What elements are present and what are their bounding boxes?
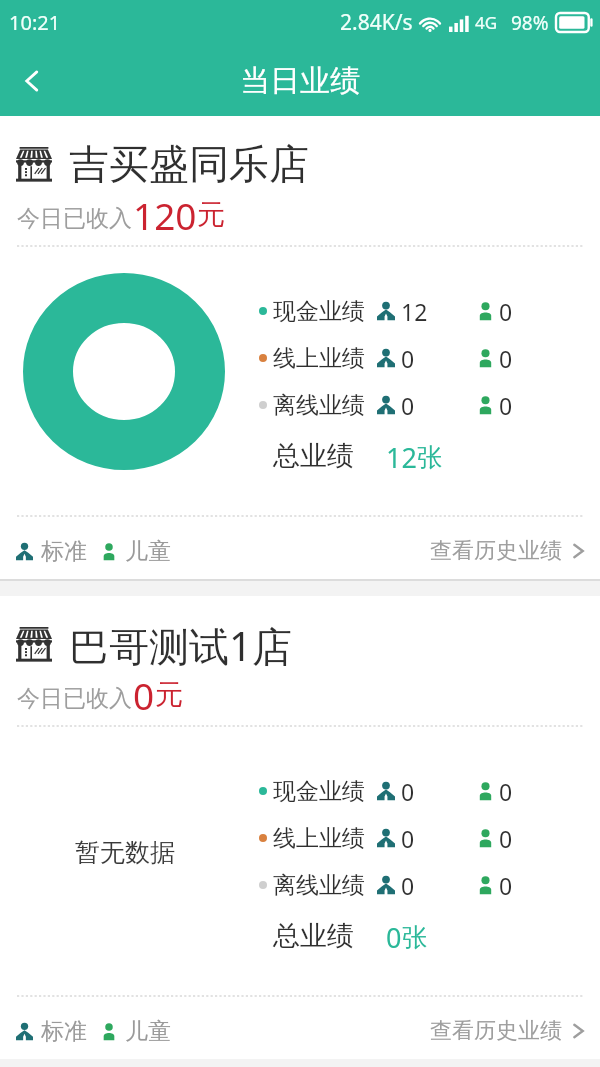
staticText: 张 (417, 442, 442, 473)
staticText: 0 (133, 670, 155, 713)
staticText: 今日已收入 (17, 684, 132, 713)
staticText: 当日业绩 (240, 62, 360, 100)
staticText: 元 (197, 197, 225, 232)
staticText: 张 (402, 922, 427, 953)
staticText: 巴哥测试1店 (69, 618, 292, 670)
staticText: 0 (401, 776, 415, 806)
staticText: 今日已收入 (17, 204, 132, 233)
staticText: 现金业绩 (273, 777, 365, 806)
staticText: 总业绩 (273, 439, 354, 473)
staticText: 离线业绩 (273, 391, 365, 420)
staticText: 0 (401, 390, 415, 420)
staticText: 0 (401, 823, 415, 853)
staticText: 离线业绩 (273, 871, 365, 900)
staticText: 120 (133, 190, 197, 233)
staticText: 儿童 (125, 1017, 171, 1046)
staticText: 0 (499, 823, 513, 853)
staticText: 标准 (41, 1017, 87, 1046)
button[interactable]: Back (0, 46, 64, 116)
staticText: 总业绩 (273, 919, 354, 953)
staticText: 0 (386, 919, 402, 953)
staticText: 查看历史业绩 (430, 537, 562, 565)
staticText: 98% (511, 10, 549, 36)
staticText: 12 (401, 296, 428, 326)
staticText: 线上业绩 (273, 344, 365, 373)
staticText: 元 (155, 677, 183, 712)
staticText: 0 (401, 343, 415, 373)
button[interactable]: 查看历史业绩 (430, 1017, 600, 1045)
staticText: 标准 (41, 537, 87, 566)
staticText: 查看历史业绩 (430, 1017, 562, 1045)
staticText: 0 (499, 870, 513, 900)
staticText: 现金业绩 (273, 297, 365, 326)
staticText: 0 (499, 296, 513, 326)
staticText: 线上业绩 (273, 824, 365, 853)
staticText: 儿童 (125, 537, 171, 566)
staticText: 0 (499, 776, 513, 806)
staticText: 吉买盛同乐店 (69, 139, 309, 189)
staticText: 4G (475, 11, 498, 34)
staticText: 0 (401, 870, 415, 900)
staticText: 12 (386, 439, 417, 473)
staticText: 10:21 (9, 9, 61, 36)
staticText: 暂无数据 (75, 837, 175, 868)
staticText: 2.84K/s (340, 8, 413, 37)
staticText: 0 (499, 390, 513, 420)
button[interactable]: 查看历史业绩 (430, 537, 600, 565)
staticText: 0 (499, 343, 513, 373)
